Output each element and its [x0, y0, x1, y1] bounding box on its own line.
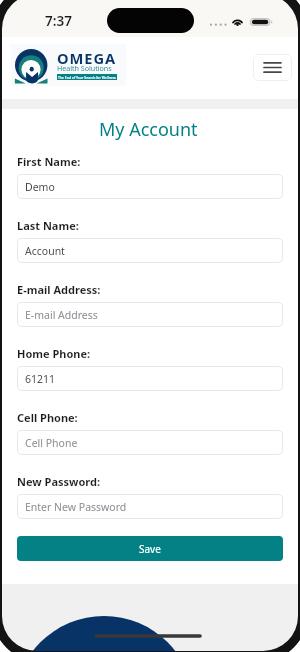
- button[interactable]: Demo: [17, 174, 283, 199]
- staticText: The End of Your Search for Wellness: [58, 75, 116, 80]
- button[interactable]: Enter New Password: [17, 494, 283, 519]
- staticText: Enter New Password: [25, 500, 127, 514]
- staticText: Cell Phone: [25, 436, 78, 450]
- button[interactable]: E-mail Address: [17, 302, 283, 327]
- button[interactable]: OMEGA: [11, 44, 126, 86]
- staticText: First Name:: [17, 154, 81, 169]
- staticText: Last Name:: [17, 218, 79, 233]
- staticText: E-mail Address:: [17, 282, 101, 297]
- staticText: Save: [139, 542, 161, 556]
- staticText: My Account: [99, 117, 198, 142]
- staticText: Account: [25, 244, 65, 258]
- button[interactable]: Account: [17, 238, 283, 263]
- staticText: OMEGA: [57, 48, 116, 68]
- button[interactable]: Menu: [253, 54, 292, 81]
- staticText: Cell Phone:: [17, 410, 78, 425]
- staticText: Health Solutions: [57, 63, 112, 73]
- staticText: 61211: [25, 372, 56, 386]
- button[interactable]: Cell Phone: [17, 430, 283, 455]
- staticText: E-mail Address: [25, 308, 98, 322]
- staticText: Home Phone:: [17, 346, 91, 361]
- staticText: Demo: [25, 180, 55, 194]
- staticText: 7:37: [45, 12, 72, 30]
- button[interactable]: Save: [17, 536, 283, 561]
- staticText: New Password:: [17, 474, 101, 489]
- button[interactable]: 61211: [17, 366, 283, 391]
